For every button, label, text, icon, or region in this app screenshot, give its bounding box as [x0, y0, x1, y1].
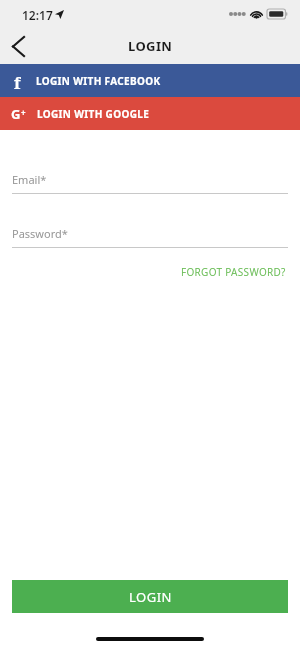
- staticText: Password*: [12, 226, 68, 241]
- staticText: LOGIN: [129, 588, 172, 606]
- staticText: +: [21, 107, 26, 118]
- staticText: f: [14, 72, 21, 90]
- staticText: LOGIN WITH FACEBOOK: [36, 74, 161, 88]
- staticText: FORGOT PASSWORD?: [181, 265, 286, 279]
- button[interactable]: Back: [0, 28, 36, 64]
- staticText: LOGIN WITH GOOGLE: [37, 107, 150, 121]
- staticText: 12:17: [22, 7, 53, 23]
- staticText: LOGIN: [128, 37, 173, 55]
- staticText: G: [11, 105, 21, 123]
- staticText: Email*: [12, 172, 47, 187]
- button[interactable]: G: [0, 97, 300, 130]
- button[interactable]: f: [0, 64, 300, 97]
- button[interactable]: LOGIN: [12, 580, 288, 613]
- button[interactable]: FORGOT PASSWORD?: [179, 262, 288, 282]
